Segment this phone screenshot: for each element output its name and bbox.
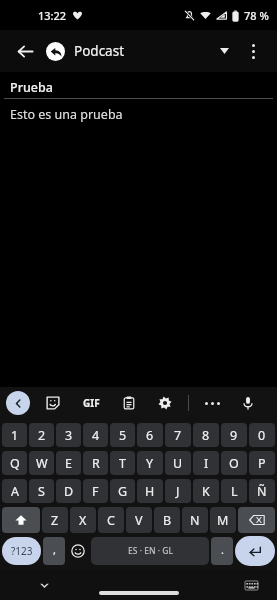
staticText: GIF bbox=[83, 396, 100, 410]
button[interactable]: More options bbox=[239, 37, 267, 65]
staticText: , bbox=[53, 542, 56, 557]
staticText: 9 bbox=[230, 427, 238, 444]
staticText: L bbox=[231, 483, 238, 500]
staticText: 5 bbox=[119, 427, 127, 444]
staticText: Prueba bbox=[10, 79, 53, 96]
button[interactable]: V bbox=[126, 507, 152, 533]
button[interactable]: 4 bbox=[83, 423, 108, 447]
button[interactable]: GIF bbox=[76, 390, 106, 416]
button[interactable]: Emoji bbox=[67, 537, 89, 565]
button[interactable]: W bbox=[29, 451, 54, 475]
button[interactable]: 1 bbox=[2, 423, 27, 447]
staticText: F bbox=[92, 483, 99, 500]
staticText: D bbox=[64, 483, 74, 500]
staticText: M bbox=[217, 512, 229, 529]
staticText: E bbox=[65, 455, 72, 472]
button[interactable]: P bbox=[249, 451, 275, 475]
button[interactable]: Select notebook bbox=[211, 38, 237, 64]
staticText: A bbox=[11, 483, 19, 500]
button[interactable]: 0 bbox=[249, 423, 275, 447]
staticText: X bbox=[79, 512, 87, 529]
button[interactable]: X bbox=[70, 507, 96, 533]
button[interactable]: 9 bbox=[221, 423, 247, 447]
staticText: Q bbox=[10, 455, 20, 472]
button[interactable]: S bbox=[29, 479, 54, 503]
button[interactable]: Voice input bbox=[235, 390, 261, 416]
button[interactable]: Backspace bbox=[238, 507, 275, 533]
button[interactable]: E bbox=[56, 451, 81, 475]
staticText: 7 bbox=[174, 427, 182, 444]
button[interactable]: Ñ bbox=[249, 479, 275, 503]
staticText: H bbox=[145, 483, 155, 500]
staticText: Ñ bbox=[257, 483, 267, 500]
staticText: T bbox=[119, 455, 126, 472]
staticText: Z bbox=[51, 512, 59, 529]
button[interactable]: Esto es una prueba bbox=[0, 99, 277, 129]
staticText: K bbox=[202, 483, 210, 500]
staticText: Podcast bbox=[74, 42, 125, 60]
button[interactable]: F bbox=[83, 479, 108, 503]
staticText: P bbox=[258, 455, 266, 472]
staticText: ?123 bbox=[11, 544, 33, 558]
staticText: C bbox=[107, 512, 115, 529]
button[interactable]: 2 bbox=[29, 423, 54, 447]
button[interactable]: I bbox=[193, 451, 219, 475]
button[interactable]: Collapse toolbar bbox=[6, 391, 30, 415]
button[interactable]: C bbox=[98, 507, 124, 533]
staticText: Esto es una prueba bbox=[10, 106, 123, 123]
staticText: S bbox=[38, 483, 45, 500]
button[interactable]: Y bbox=[137, 451, 163, 475]
button[interactable]: N bbox=[182, 507, 208, 533]
staticText: 4 bbox=[92, 427, 100, 444]
button[interactable]: Period bbox=[211, 537, 233, 565]
button[interactable]: Podcast notebook icon bbox=[46, 42, 65, 61]
button[interactable]: R bbox=[83, 451, 108, 475]
button[interactable]: Settings bbox=[152, 390, 178, 416]
button[interactable]: Prueba bbox=[0, 76, 277, 98]
staticText: 78 % bbox=[244, 8, 269, 23]
button[interactable]: Comma bbox=[43, 537, 65, 565]
staticText: Y bbox=[146, 455, 154, 472]
staticText: G bbox=[118, 483, 128, 500]
button[interactable]: Back bbox=[10, 36, 40, 66]
button[interactable]: B bbox=[154, 507, 180, 533]
button[interactable]: Clipboard bbox=[116, 390, 142, 416]
staticText: B bbox=[163, 512, 172, 529]
button[interactable]: M bbox=[210, 507, 236, 533]
button[interactable]: Enter bbox=[235, 536, 275, 566]
button[interactable]: Hide keyboard bbox=[32, 573, 56, 597]
button[interactable]: L bbox=[221, 479, 247, 503]
button[interactable]: 5 bbox=[110, 423, 135, 447]
button[interactable]: J bbox=[165, 479, 191, 503]
staticText: I bbox=[204, 455, 209, 472]
button[interactable]: 7 bbox=[165, 423, 191, 447]
button[interactable]: 6 bbox=[137, 423, 163, 447]
staticText: 3 bbox=[65, 427, 73, 444]
button[interactable]: 8 bbox=[193, 423, 219, 447]
staticText: 2 bbox=[38, 427, 46, 444]
staticText: V bbox=[135, 512, 143, 529]
staticText: 0 bbox=[258, 427, 266, 444]
button[interactable]: Switch keyboard bbox=[239, 573, 263, 597]
button[interactable]: ?123 bbox=[2, 537, 41, 565]
button[interactable]: Z bbox=[42, 507, 68, 533]
button[interactable]: T bbox=[110, 451, 135, 475]
button[interactable]: D bbox=[56, 479, 81, 503]
button[interactable]: A bbox=[2, 479, 27, 503]
button[interactable]: G bbox=[110, 479, 135, 503]
button[interactable]: K bbox=[193, 479, 219, 503]
staticText: J bbox=[176, 483, 180, 500]
button[interactable]: U bbox=[165, 451, 191, 475]
staticText: ES · EN · GL bbox=[128, 545, 173, 557]
button[interactable]: Stickers bbox=[40, 390, 66, 416]
button[interactable]: Q bbox=[2, 451, 27, 475]
button[interactable]: 3 bbox=[56, 423, 81, 447]
button[interactable]: Space bbox=[91, 537, 209, 565]
button[interactable]: H bbox=[137, 479, 163, 503]
button[interactable]: More bbox=[199, 390, 225, 416]
staticText: N bbox=[190, 512, 200, 529]
staticText: . bbox=[221, 542, 224, 557]
button[interactable]: O bbox=[221, 451, 247, 475]
staticText: U bbox=[173, 455, 183, 472]
button[interactable]: Shift bbox=[2, 507, 40, 533]
